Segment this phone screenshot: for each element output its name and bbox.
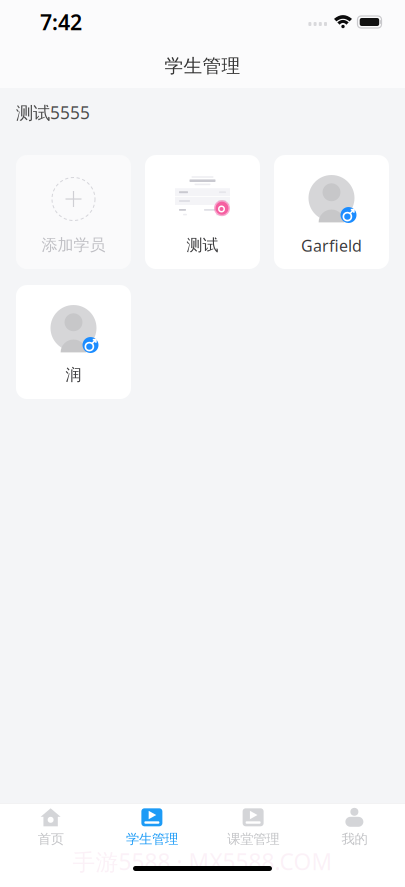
staticText: 7:42 [40,8,82,36]
button[interactable]: 测试 [145,155,260,269]
button[interactable]: Garfield [274,155,389,269]
staticText: 添加学员 [41,235,105,255]
button[interactable]: 首页 [0,802,101,855]
button[interactable]: 课堂管理 [202,802,304,855]
staticText: Garfield [301,235,362,256]
staticText: 学生管理 [126,831,178,847]
staticText: 首页 [38,831,64,847]
button[interactable]: 添加学员 [16,155,131,269]
staticText: 学生管理 [164,54,240,77]
button[interactable]: 润 [16,285,131,399]
staticText: 测试 [186,235,218,255]
staticText: 我的 [341,831,367,847]
button[interactable]: 学生管理 [101,802,202,855]
button[interactable]: 我的 [304,802,405,855]
staticText: 测试5555 [16,101,90,124]
staticText: 手游5588 · MX5588.COM [72,846,332,876]
staticText: 课堂管理 [227,831,279,847]
staticText: 润 [65,365,81,385]
